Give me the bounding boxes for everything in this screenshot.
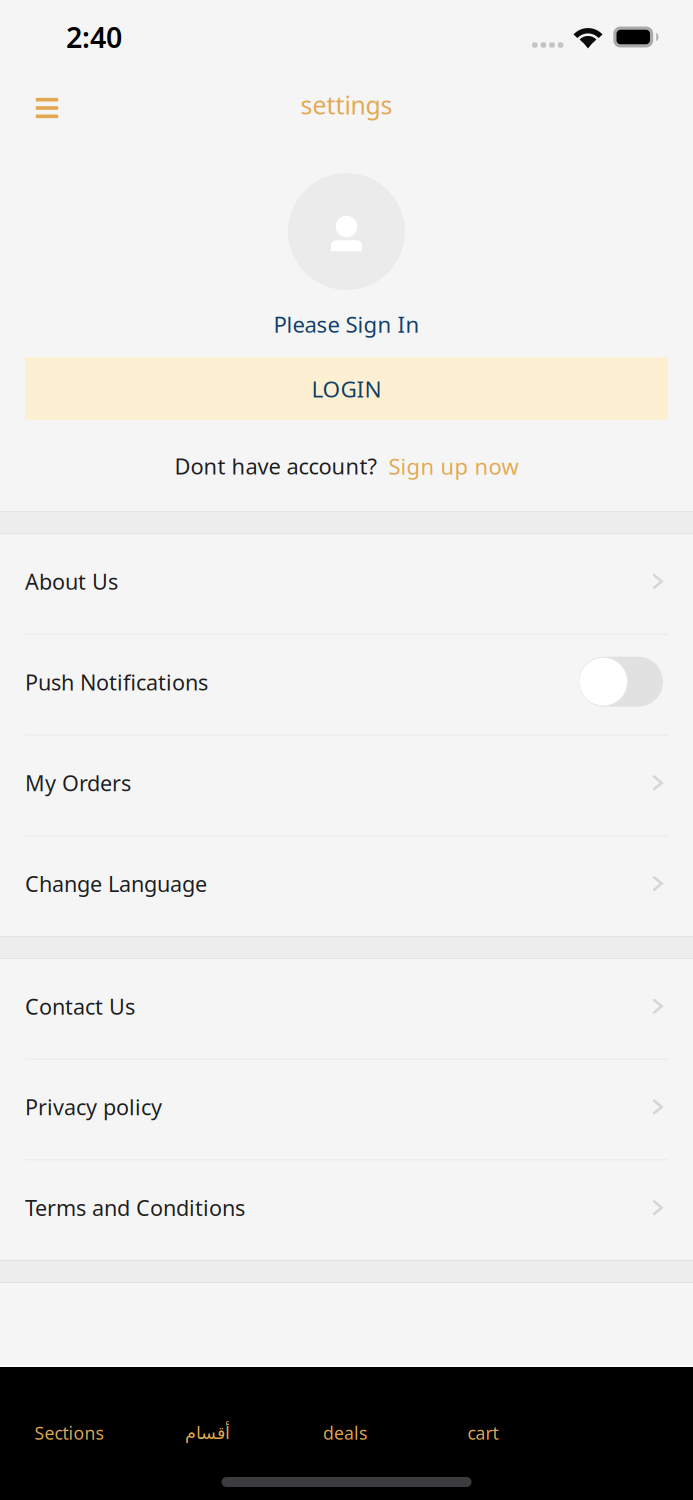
staticText: أقسام [184, 1423, 229, 1443]
staticText: My Orders [25, 768, 131, 797]
button[interactable]: أقسام [138, 1413, 276, 1453]
staticText: Contact Us [25, 991, 135, 1021]
button[interactable]: Push Notifications [579, 660, 663, 710]
staticText: Dont have account? [174, 451, 376, 481]
button[interactable]: Menu [25, 83, 69, 127]
button[interactable]: cart [414, 1413, 552, 1453]
staticText: Terms and Conditions [25, 1193, 245, 1222]
button[interactable]: deals [276, 1413, 414, 1453]
staticText: LOGIN [311, 373, 381, 404]
staticText: cart [467, 1421, 498, 1445]
staticText: Change Language [25, 869, 207, 898]
staticText: Please Sign In [273, 309, 419, 339]
button[interactable]: LOGIN [25, 357, 668, 420]
staticText: Sections [34, 1421, 103, 1445]
staticText: deals [323, 1421, 367, 1445]
button[interactable]: About Us [0, 534, 693, 634]
button[interactable]: Terms and Conditions [0, 1160, 693, 1260]
button[interactable]: Privacy policy [0, 1060, 693, 1159]
staticText: Push Notifications [25, 667, 208, 697]
staticText: settings [300, 88, 392, 122]
staticText: About Us [25, 567, 118, 596]
button[interactable]: Sign up now [388, 451, 518, 481]
button[interactable]: My Orders [0, 735, 693, 835]
staticText: Sign up now [388, 451, 518, 481]
button[interactable]: Change Language [0, 836, 693, 936]
staticText: 2:40 [66, 18, 122, 56]
button[interactable]: Sections [0, 1413, 138, 1453]
button[interactable]: Contact Us [0, 959, 693, 1059]
staticText: Privacy policy [25, 1092, 162, 1122]
